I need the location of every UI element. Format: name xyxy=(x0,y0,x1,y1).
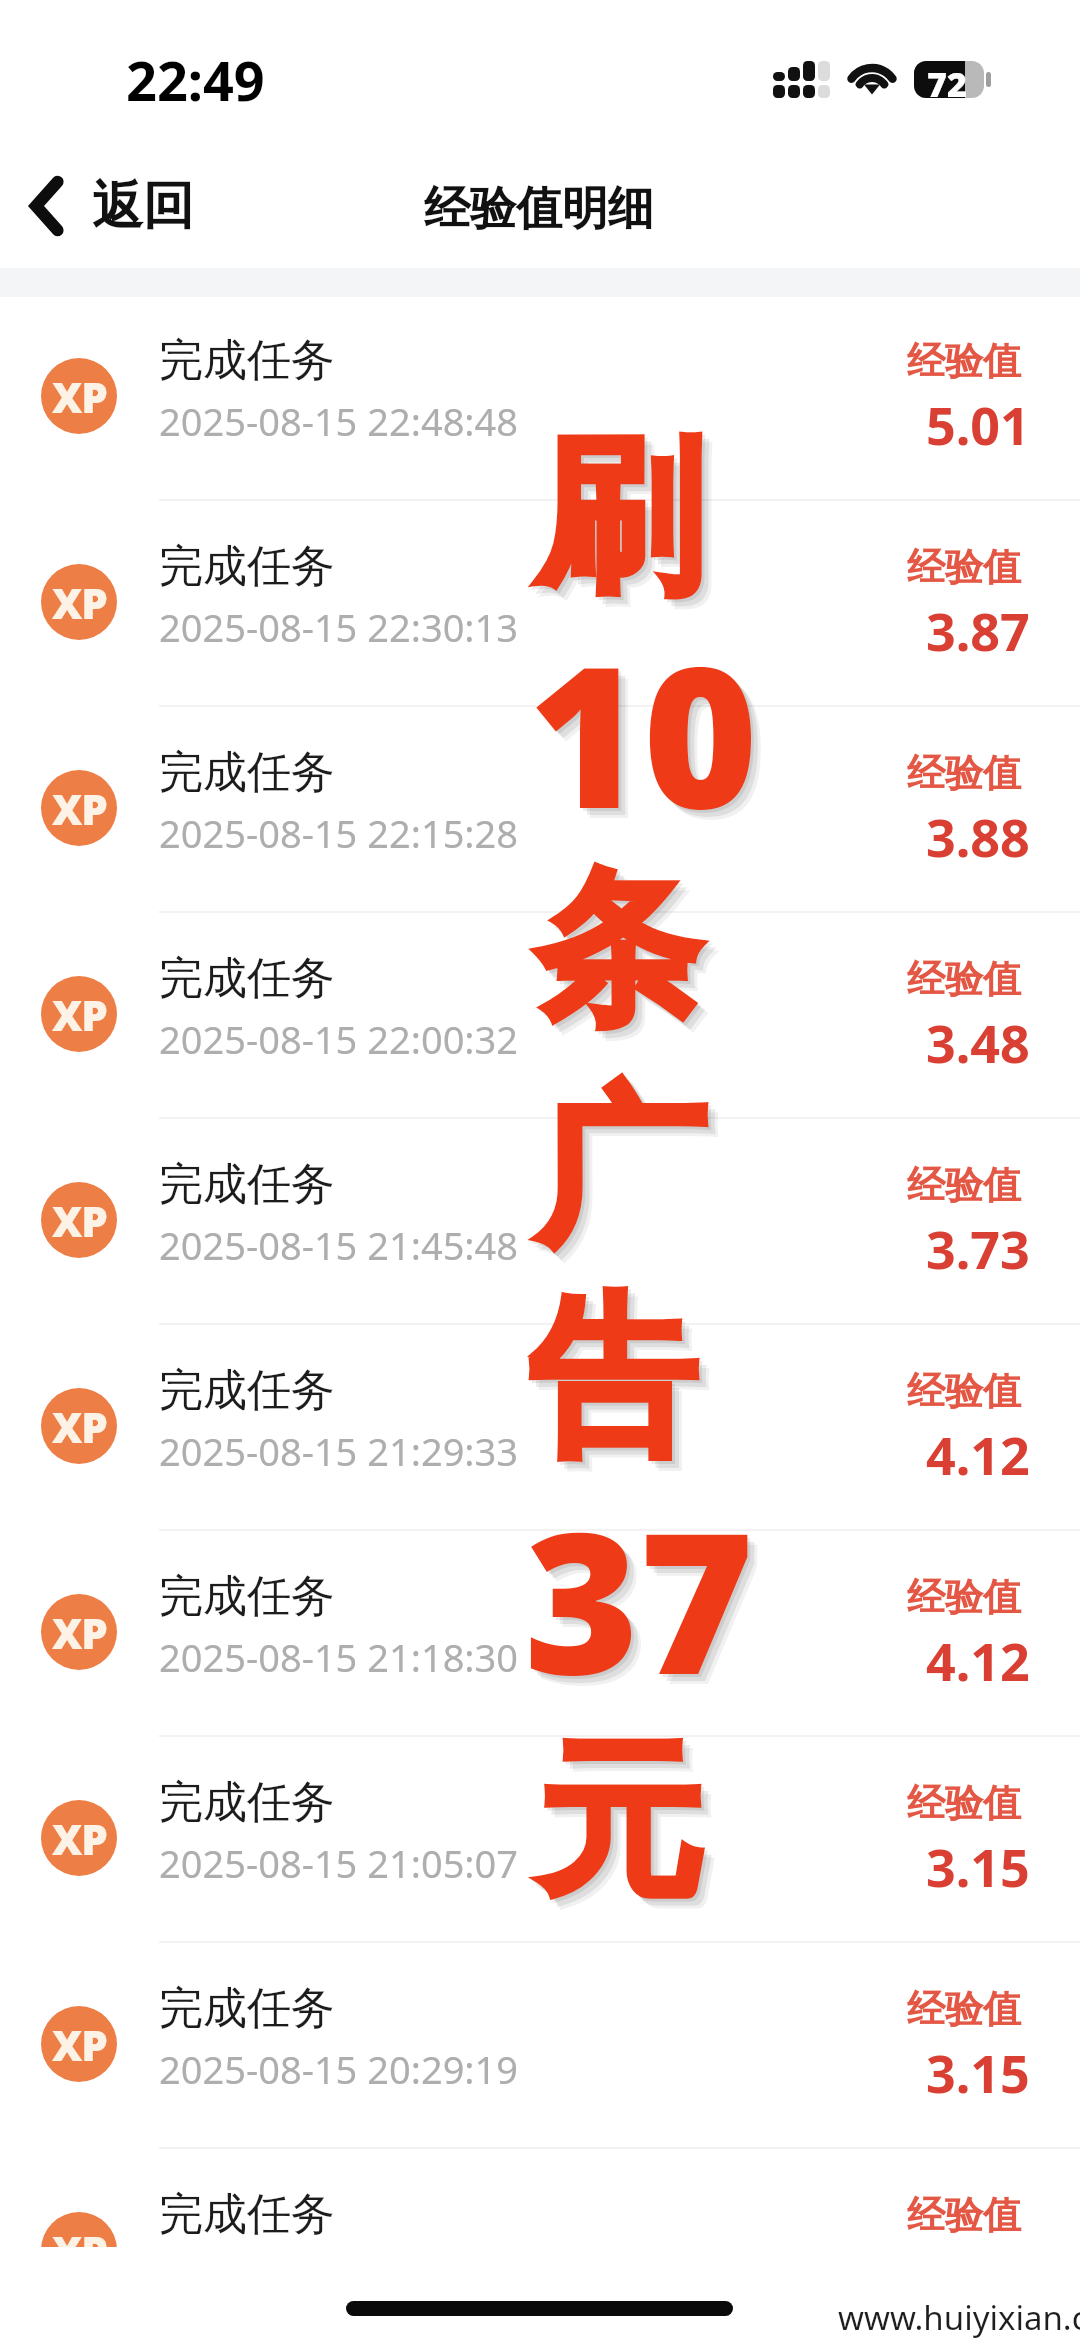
other: Wi-Fi xyxy=(847,58,897,94)
button[interactable]: XP xyxy=(0,293,1080,499)
button[interactable]: XP xyxy=(0,1529,1080,1735)
staticText: 完成任务 xyxy=(159,1775,335,1830)
staticText: 告 xyxy=(532,1277,699,1487)
staticText: 经验值 xyxy=(907,2191,1021,2239)
staticText: 2025-08-15 21:45:48 xyxy=(159,1219,519,1271)
staticText: XP xyxy=(52,2222,107,2279)
staticText: 2025-08-15 21:05:07 xyxy=(159,1837,519,1889)
staticText: 条 xyxy=(544,856,711,1066)
staticText: 3.15 xyxy=(926,2037,1030,2108)
staticText: 3.02 xyxy=(926,2243,1030,2314)
staticText: 完成任务 xyxy=(159,1569,335,1624)
staticText: 4.12 xyxy=(926,1625,1030,1696)
staticText: 经验值 xyxy=(907,1161,1021,1209)
staticText: 完成任务 xyxy=(159,2187,335,2242)
staticText: 经验值明细 xyxy=(424,180,654,238)
staticText: 广 xyxy=(538,1067,708,1281)
staticText: 5.01 xyxy=(926,389,1030,460)
button[interactable]: XP xyxy=(0,1941,1080,2147)
staticText: 2025-08-15 21:29:33 xyxy=(159,1425,519,1477)
staticText: 完成任务 xyxy=(159,1981,335,2036)
button[interactable]: XP xyxy=(0,1323,1080,1529)
button[interactable]: XP xyxy=(0,2147,1080,2338)
staticText: 10 xyxy=(538,608,768,875)
staticText: 条 xyxy=(537,849,704,1059)
button[interactable]: XP xyxy=(0,705,1080,911)
staticText: 37 xyxy=(531,1471,761,1738)
staticText: 3.15 xyxy=(926,1831,1030,1902)
staticText: 广 xyxy=(542,1071,712,1285)
staticText: 经验值 xyxy=(907,1573,1021,1621)
staticText: XP xyxy=(52,1192,107,1249)
staticText: 完成任务 xyxy=(159,1363,335,1418)
staticText: XP xyxy=(52,574,107,631)
staticText: 刷 xyxy=(536,413,703,623)
staticText: XP xyxy=(52,780,107,837)
staticText: 37 xyxy=(524,1464,754,1731)
staticText: 完成任务 xyxy=(159,745,335,800)
button[interactable]: XP xyxy=(0,911,1080,1117)
staticText: 广 xyxy=(545,1074,715,1288)
staticText: 元 xyxy=(543,1724,710,1934)
staticText: 2025-08-15 20:29:19 xyxy=(159,2043,519,2095)
staticText: 条 xyxy=(534,846,701,1056)
staticText: 完成任务 xyxy=(159,333,335,388)
staticText: 10 xyxy=(531,601,761,868)
staticText: 72 xyxy=(927,61,967,98)
staticText: 告 xyxy=(539,1284,706,1494)
staticText: 4.12 xyxy=(926,1419,1030,1490)
staticText: 2025-08-15 22:00:32 xyxy=(159,1013,519,1065)
staticText: 元 xyxy=(539,1720,706,1930)
staticText: 3.87 xyxy=(926,595,1030,666)
staticText: 2025-08-15 22:15:28 xyxy=(159,807,519,859)
staticText: 经验值 xyxy=(907,955,1021,1003)
staticText: 返回 xyxy=(92,174,194,238)
staticText: 2025-08-15 22:30:13 xyxy=(159,601,519,653)
staticText: 2025-08-15 22:48:48 xyxy=(159,395,519,447)
staticText: 3.88 xyxy=(926,801,1030,872)
staticText: 3.73 xyxy=(926,1213,1030,1284)
staticText: 2025-08-15 21:18:30 xyxy=(159,1631,519,1683)
staticText: XP xyxy=(52,1810,107,1867)
staticText: 告 xyxy=(529,1274,696,1484)
staticText: 经验值 xyxy=(907,1779,1021,1827)
staticText: 元 xyxy=(536,1717,703,1927)
staticText: 22:49 xyxy=(126,43,265,117)
staticText: 完成任务 xyxy=(159,539,335,594)
staticText: 经验值 xyxy=(907,1367,1021,1415)
staticText: 元 xyxy=(546,1727,713,1937)
staticText: 完成任务 xyxy=(159,951,335,1006)
staticText: 经验值 xyxy=(907,337,1021,385)
staticText: XP xyxy=(52,368,107,425)
staticText: www.huiyixian.com xyxy=(838,2295,1080,2338)
staticText: 刷 xyxy=(539,416,706,626)
staticText: 经验值 xyxy=(907,543,1021,591)
other: Back xyxy=(28,174,68,238)
staticText: XP xyxy=(52,1398,107,1455)
staticText: XP xyxy=(52,986,107,1043)
staticText: 完成任务 xyxy=(159,1157,335,1212)
staticText: 告 xyxy=(536,1281,703,1491)
button[interactable]: Back xyxy=(0,166,212,246)
staticText: 37 xyxy=(527,1467,757,1734)
staticText: 经验值 xyxy=(907,1985,1021,2033)
button[interactable]: XP xyxy=(0,1117,1080,1323)
staticText: 条 xyxy=(541,853,708,1063)
staticText: XP xyxy=(52,2016,107,2073)
button[interactable]: XP xyxy=(0,1735,1080,1941)
staticText: 37 xyxy=(534,1474,764,1741)
staticText: 刷 xyxy=(543,420,710,630)
other: Battery 72 percent xyxy=(914,61,996,98)
staticText: 广 xyxy=(535,1064,705,1278)
staticText: 10 xyxy=(535,605,765,872)
staticText: 刷 xyxy=(546,423,713,633)
other: Cellular signal xyxy=(773,61,829,98)
button[interactable]: XP xyxy=(0,499,1080,705)
staticText: 3.48 xyxy=(926,1007,1030,1078)
staticText: XP xyxy=(52,1604,107,1661)
staticText: 10 xyxy=(528,598,758,865)
staticText: 经验值 xyxy=(907,749,1021,797)
